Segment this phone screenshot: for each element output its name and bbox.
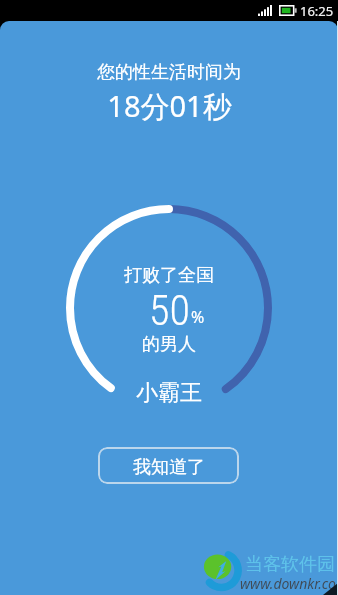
staticText: 小霸王 xyxy=(136,379,202,407)
staticText: 您的性生活时间为 xyxy=(97,61,241,84)
staticText: 18分01秒 xyxy=(107,86,232,126)
staticText: 打败了全国 xyxy=(124,264,214,287)
staticText: % xyxy=(191,306,205,328)
staticText: 当客软件园 xyxy=(245,553,335,576)
staticText: 我知道了 xyxy=(133,456,205,479)
staticText: 16:25 xyxy=(300,2,334,20)
button[interactable]: 我知道了 xyxy=(98,447,239,484)
staticText: 的男人 xyxy=(142,333,196,356)
staticText: 50 xyxy=(149,286,190,335)
staticText: www.downkr.com xyxy=(240,574,338,593)
